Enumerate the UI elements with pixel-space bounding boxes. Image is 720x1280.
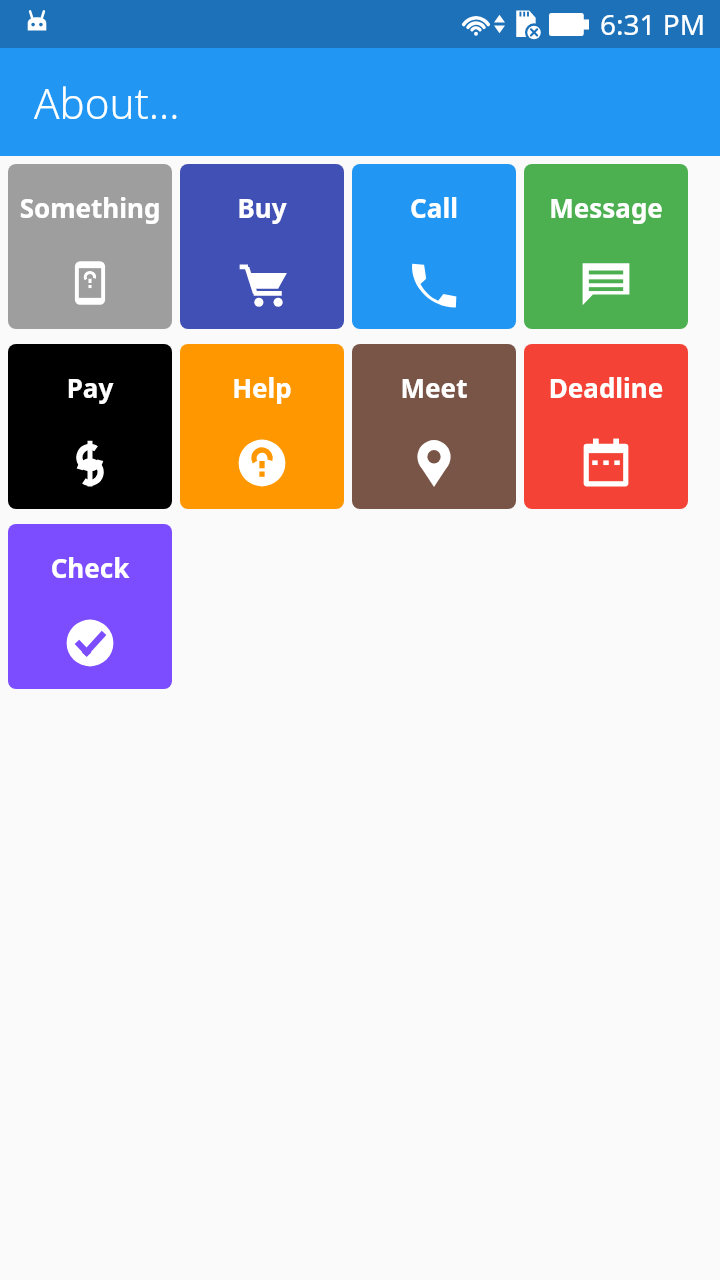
staticText: Call bbox=[352, 190, 516, 225]
staticText: Check bbox=[8, 550, 172, 585]
button[interactable]: Check bbox=[8, 524, 172, 689]
button[interactable]: Message bbox=[524, 164, 688, 329]
button[interactable]: Something bbox=[8, 164, 172, 329]
staticText: Meet bbox=[352, 370, 516, 405]
button[interactable]: Deadline bbox=[524, 344, 688, 509]
button[interactable]: Help bbox=[180, 344, 344, 509]
button[interactable]: Meet bbox=[352, 344, 516, 509]
staticText: Help bbox=[180, 370, 344, 405]
button[interactable]: Call bbox=[352, 164, 516, 329]
staticText: Message bbox=[524, 190, 688, 225]
button[interactable]: Buy bbox=[180, 164, 344, 329]
staticText: Pay bbox=[8, 370, 172, 405]
staticText: Deadline bbox=[524, 370, 688, 405]
staticText: Buy bbox=[180, 190, 344, 225]
staticText: About... bbox=[34, 74, 180, 131]
button[interactable]: Pay bbox=[8, 344, 172, 509]
staticText: 6:31 PM bbox=[600, 5, 706, 43]
staticText: Something bbox=[8, 190, 172, 225]
